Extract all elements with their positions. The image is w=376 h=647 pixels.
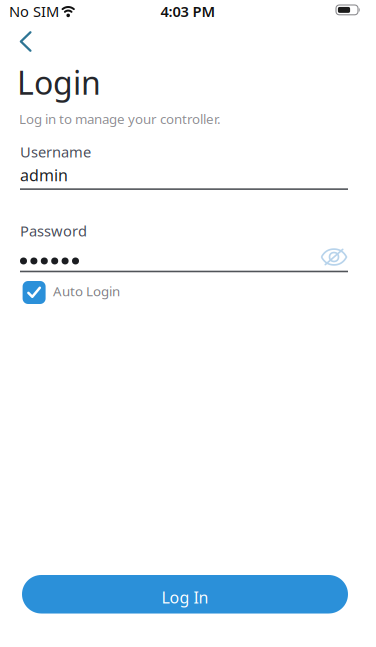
button[interactable]: Log In	[22, 575, 348, 613]
staticText: Username	[20, 142, 91, 161]
button[interactable]: Show password	[314, 242, 353, 272]
staticText: Auto Login	[53, 282, 120, 300]
button[interactable]: Username, admin	[20, 142, 348, 190]
staticText: Password	[20, 221, 87, 240]
button[interactable]: Password	[20, 221, 348, 272]
button[interactable]: Back	[10, 21, 42, 62]
staticText: No SIM	[9, 1, 59, 21]
staticText: admin	[20, 164, 68, 186]
staticText: 4:03 PM	[160, 1, 215, 21]
staticText: Login	[17, 61, 101, 103]
staticText: Log In	[161, 587, 208, 608]
staticText: Log in to manage your controller.	[19, 110, 221, 128]
button[interactable]: Auto Login	[17, 275, 126, 310]
